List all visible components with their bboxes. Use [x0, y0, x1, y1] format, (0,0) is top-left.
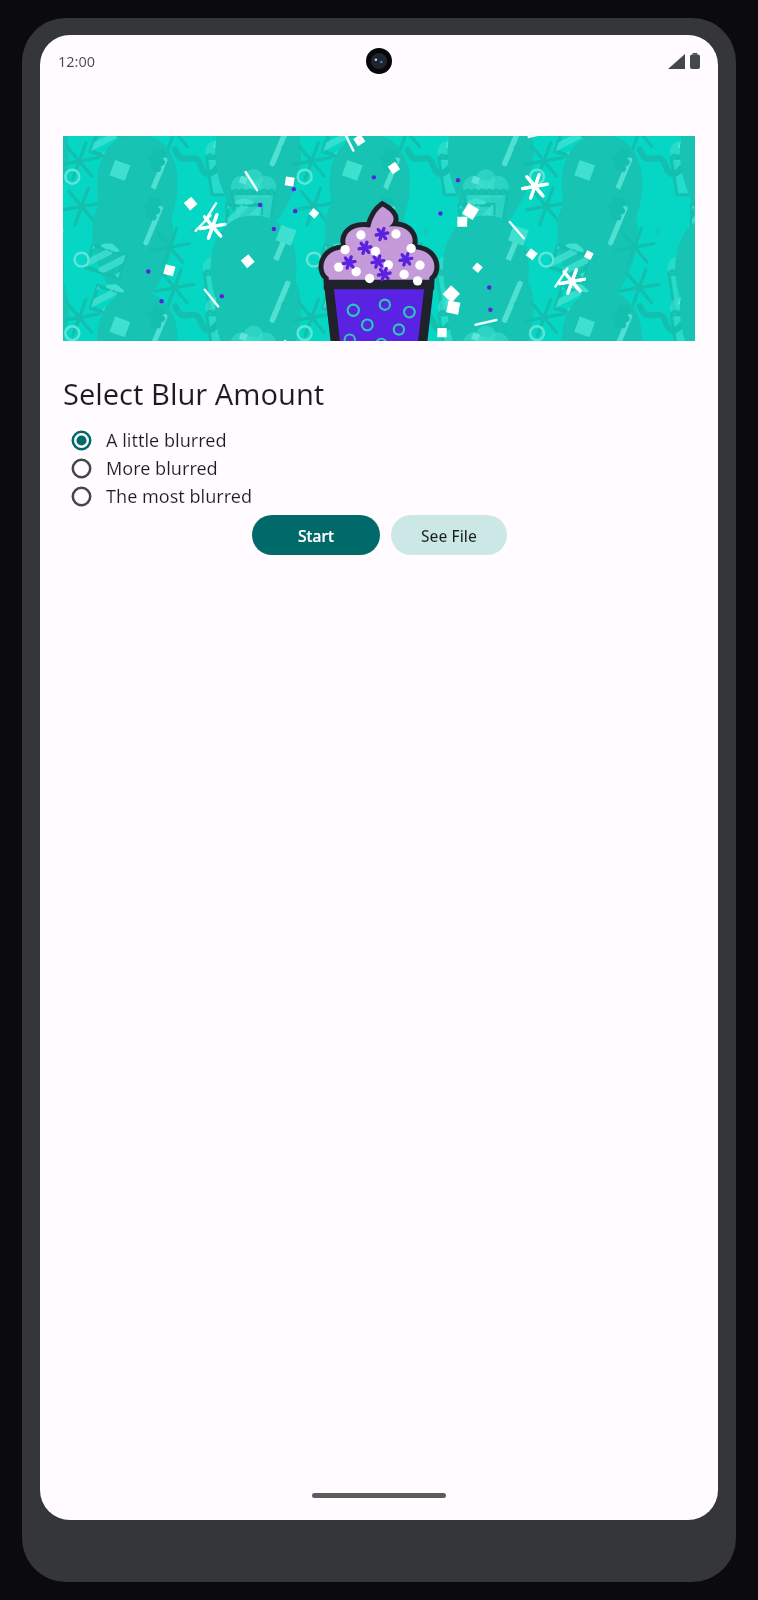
button[interactable]: See File [391, 515, 507, 555]
button[interactable]: A little blurred [40, 426, 718, 454]
button[interactable]: The most blurred [40, 482, 718, 510]
staticText: 12:00 [58, 51, 96, 71]
staticText: More blurred [106, 456, 218, 481]
staticText: A little blurred [106, 428, 227, 453]
staticText: The most blurred [106, 484, 253, 509]
staticText: Select Blur Amount [63, 374, 325, 413]
staticText: Start [298, 525, 334, 546]
button[interactable]: Start [252, 515, 380, 555]
button[interactable]: More blurred [40, 454, 718, 482]
staticText: See File [421, 525, 477, 546]
